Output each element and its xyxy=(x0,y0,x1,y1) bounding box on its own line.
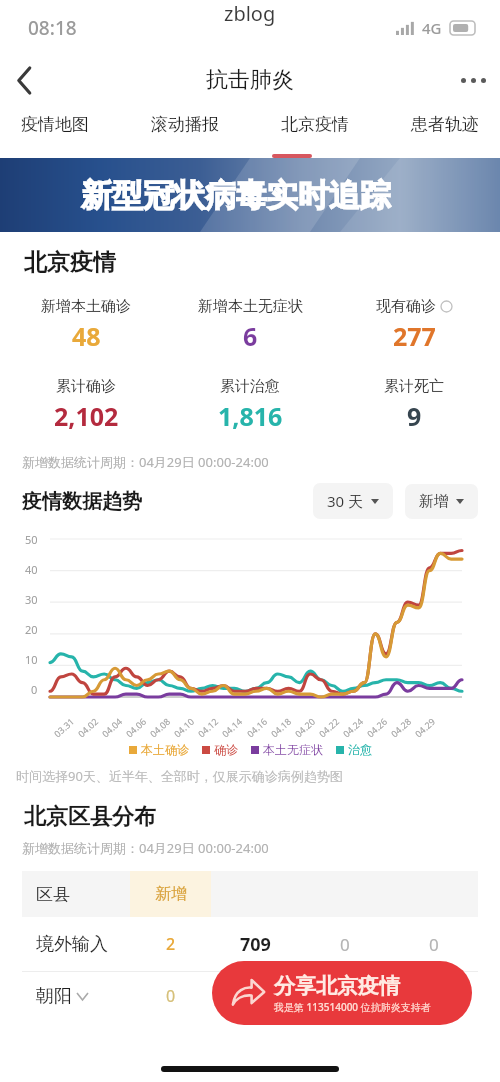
staticText: 6 xyxy=(243,319,258,353)
staticText: 10 xyxy=(25,652,38,667)
staticText: 新增 xyxy=(419,492,449,511)
staticText: 08:18 xyxy=(28,15,77,41)
staticText: 累计确诊 xyxy=(56,377,116,396)
staticText: 累计治愈 xyxy=(220,377,280,396)
button[interactable]: 疫情地图 xyxy=(16,104,94,145)
staticText: 04.14 xyxy=(219,714,245,739)
staticText: 04.06 xyxy=(123,714,149,739)
button[interactable]: More options xyxy=(446,56,500,104)
staticText: 新增 xyxy=(155,884,187,904)
staticText: 04.20 xyxy=(292,714,318,739)
staticText: 现有确诊 xyxy=(376,297,436,316)
staticText: 30 天 xyxy=(327,491,364,511)
staticText: 抗击肺炎 xyxy=(206,66,294,94)
button[interactable]: 新增本土确诊 xyxy=(4,297,168,353)
button[interactable]: 新增本土无症状 xyxy=(168,297,332,353)
staticText: 04.18 xyxy=(268,714,294,739)
staticText: 04.12 xyxy=(195,714,221,739)
staticText: 新增本土确诊 xyxy=(41,297,131,316)
staticText: 04.08 xyxy=(147,714,173,739)
staticText: 0 xyxy=(31,682,38,697)
staticText: 治愈 xyxy=(348,742,372,757)
staticText: 滚动播报 xyxy=(151,114,219,135)
staticText: 03.31 xyxy=(51,714,77,739)
staticText: 9 xyxy=(407,399,422,433)
button[interactable]: 北京疫情 xyxy=(276,104,354,145)
staticText: 04.02 xyxy=(75,714,101,739)
staticText: 0 xyxy=(340,933,350,956)
staticText: 本土无症状 xyxy=(263,742,323,757)
staticText: 患者轨迹 xyxy=(411,114,479,135)
button[interactable]: Back xyxy=(0,56,48,104)
staticText: 18 xyxy=(424,985,444,1008)
staticText: 40 xyxy=(25,562,38,577)
button[interactable]: 分享北京疫情 xyxy=(212,961,472,1025)
staticText: 04.28 xyxy=(388,714,414,739)
staticText: 709 xyxy=(240,932,271,957)
staticText: 04.29 xyxy=(412,714,438,739)
staticText: 20 xyxy=(25,622,38,637)
staticText: 04.16 xyxy=(244,714,270,739)
staticText: 境外输入 xyxy=(36,933,108,956)
staticText: 0 xyxy=(166,985,176,1007)
staticText: 北京区县分布 xyxy=(24,803,156,831)
staticText: 确诊 xyxy=(214,742,238,757)
staticText: 277 xyxy=(393,319,436,353)
staticText: 疫情地图 xyxy=(21,114,89,135)
button[interactable]: 朝阳 xyxy=(22,972,478,1020)
staticText: 30 xyxy=(25,592,38,607)
button[interactable]: 新增 xyxy=(405,484,478,519)
staticText: 125 xyxy=(330,985,360,1008)
staticText: 04.10 xyxy=(171,714,197,739)
staticText: 时间选择90天、近半年、全部时，仅展示确诊病例趋势图 xyxy=(16,767,343,785)
button[interactable]: 累计确诊 xyxy=(4,377,168,433)
staticText: 2,102 xyxy=(54,399,119,433)
staticText: 新增数据统计周期：04月29日 00:00-24:00 xyxy=(22,453,269,471)
staticText: 朝阳 xyxy=(36,985,72,1008)
button[interactable]: 境外输入 xyxy=(22,917,478,971)
staticText: 新型冠状病毒实时追踪 xyxy=(81,176,391,215)
staticText: 04.26 xyxy=(364,714,390,739)
staticText: 04.24 xyxy=(340,714,366,739)
button[interactable]: 30 天 xyxy=(313,483,393,519)
button[interactable]: 现有确诊 xyxy=(332,297,496,353)
staticText: 0 xyxy=(429,933,439,956)
staticText: 累计死亡 xyxy=(384,377,444,396)
staticText: 北京疫情 xyxy=(281,114,349,135)
button[interactable]: 累计治愈 xyxy=(168,377,332,433)
staticText: 疫情数据趋势 xyxy=(22,489,142,514)
staticText: zblog xyxy=(224,0,276,27)
staticText: 04.22 xyxy=(316,714,342,739)
staticText: 1,816 xyxy=(218,399,283,433)
staticText: 新增数据统计周期：04月29日 00:00-24:00 xyxy=(22,839,269,857)
button[interactable]: 患者轨迹 xyxy=(406,104,484,145)
staticText: 分享北京疫情 xyxy=(274,973,400,999)
staticText: 北京疫情 xyxy=(24,248,116,277)
staticText: 50 xyxy=(25,532,38,547)
button[interactable]: 滚动播报 xyxy=(146,104,224,145)
staticText: 区县 xyxy=(36,884,70,905)
staticText: 48 xyxy=(72,319,101,353)
staticText: 新增本土无症状 xyxy=(198,297,303,316)
staticText: 2 xyxy=(166,933,176,955)
staticText: 249 xyxy=(240,984,271,1009)
staticText: 本土确诊 xyxy=(141,742,189,757)
staticText: 我是第 113514000 位抗肺炎支持者 xyxy=(274,1000,431,1014)
staticText: 04.04 xyxy=(99,714,125,739)
button[interactable]: 累计死亡 xyxy=(332,377,496,433)
staticText: 4G xyxy=(422,18,442,38)
